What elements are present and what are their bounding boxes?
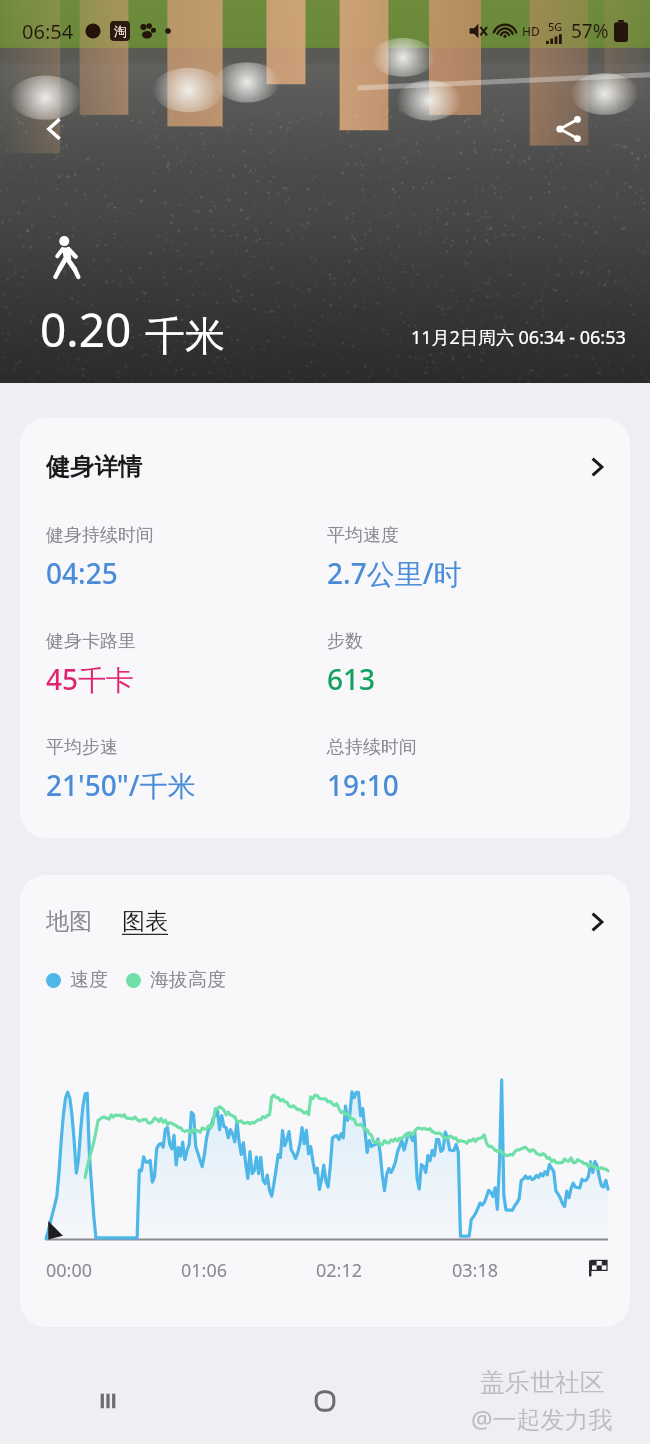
staticText: HD xyxy=(522,23,540,39)
staticText: @一起发力我 xyxy=(471,1402,613,1435)
button[interactable]: 图表 xyxy=(122,907,168,936)
button[interactable]: 地图 xyxy=(46,907,92,936)
staticText: 03:18 xyxy=(452,1258,499,1283)
staticText: 健身详情 xyxy=(46,452,142,482)
staticText: 平均速度 xyxy=(327,524,399,547)
staticText: 19:10 xyxy=(327,766,399,804)
staticText: 01:06 xyxy=(181,1258,228,1283)
button[interactable]: 健身详情 xyxy=(20,418,630,838)
staticText: 02:12 xyxy=(316,1258,363,1283)
staticText: 613 xyxy=(327,660,376,698)
staticText: 04:25 xyxy=(46,554,118,592)
staticText: 总持续时间 xyxy=(327,736,417,759)
staticText: 21'50"/千米 xyxy=(46,766,196,804)
button[interactable]: Back xyxy=(26,100,84,158)
staticText: 淘 xyxy=(114,23,127,39)
staticText: 地图 xyxy=(46,907,92,936)
staticText: 速度 xyxy=(70,968,108,992)
button[interactable]: Recents xyxy=(0,1358,216,1444)
staticText: 2.7公里/时 xyxy=(327,554,462,592)
button[interactable]: Home xyxy=(216,1358,433,1444)
staticText: 盖乐世社区 xyxy=(480,1367,605,1398)
staticText: 45千卡 xyxy=(46,660,135,698)
button[interactable]: Share xyxy=(540,100,598,158)
staticText: 健身卡路里 xyxy=(46,630,136,653)
staticText: 平均步速 xyxy=(46,736,118,759)
staticText: 00:00 xyxy=(46,1258,93,1283)
staticText: 步数 xyxy=(327,630,363,653)
staticText: 健身持续时间 xyxy=(46,524,154,547)
other: Open fitness details xyxy=(586,456,608,478)
staticText: 11月2日周六 06:34 - 06:53 xyxy=(411,325,626,350)
staticText: 图表 xyxy=(122,907,168,936)
staticText: 海拔高度 xyxy=(150,968,226,992)
button[interactable]: Open chart xyxy=(586,911,608,933)
staticText: 5G xyxy=(548,19,563,34)
staticText: 0.20 xyxy=(40,298,132,361)
staticText: 千米 xyxy=(145,311,225,361)
staticText: 06:54 xyxy=(22,18,74,45)
staticText: 57% xyxy=(571,18,609,44)
